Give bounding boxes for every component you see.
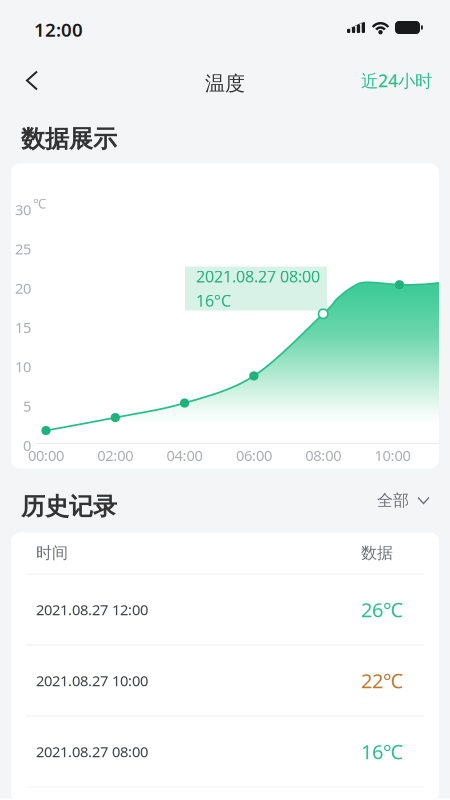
staticText: ℃ xyxy=(33,194,46,212)
staticText: 08:00 xyxy=(305,445,341,465)
staticText: 25 xyxy=(15,239,31,258)
staticText: 数据 xyxy=(361,543,393,563)
staticText: 近24小时 xyxy=(361,69,432,92)
staticText: 历史记录 xyxy=(21,492,117,521)
staticText: 10 xyxy=(15,357,31,376)
staticText: 全部 xyxy=(377,491,409,510)
staticText: 2021.08.27 08:00 xyxy=(196,266,320,287)
staticText: 22℃ xyxy=(361,667,403,694)
staticText: 02:00 xyxy=(97,445,133,465)
staticText: 26℃ xyxy=(361,596,403,623)
staticText: 12:00 xyxy=(34,17,83,42)
staticText: 30 xyxy=(15,200,31,219)
staticText: 16°C xyxy=(196,290,231,311)
staticText: 16℃ xyxy=(361,738,403,765)
staticText: 时间 xyxy=(36,543,68,563)
staticText: 04:00 xyxy=(167,445,203,465)
button[interactable]: 2021.08.27 10:00 xyxy=(11,645,439,715)
staticText: 15 xyxy=(15,318,31,337)
staticText: 2021.08.27 10:00 xyxy=(36,671,148,690)
button[interactable]: 2021.08.27 12:00 xyxy=(11,574,439,644)
button[interactable]: 近24小时 xyxy=(349,56,450,104)
button[interactable]: 2021.08.27 08:00 xyxy=(11,716,439,786)
staticText: 2021.08.27 12:00 xyxy=(36,600,148,619)
staticText: 温度 xyxy=(205,71,245,96)
staticText: 5 xyxy=(23,396,31,416)
staticText: 10:00 xyxy=(374,445,410,465)
staticText: 00:00 xyxy=(28,445,64,465)
staticText: 0 xyxy=(23,435,31,455)
staticText: 20 xyxy=(15,278,31,298)
staticText: 06:00 xyxy=(236,445,272,465)
button[interactable]: 全部 xyxy=(361,491,429,510)
staticText: 数据展示 xyxy=(21,124,117,154)
staticText: 2021.08.27 08:00 xyxy=(36,742,148,761)
button[interactable]: Back xyxy=(0,56,57,104)
